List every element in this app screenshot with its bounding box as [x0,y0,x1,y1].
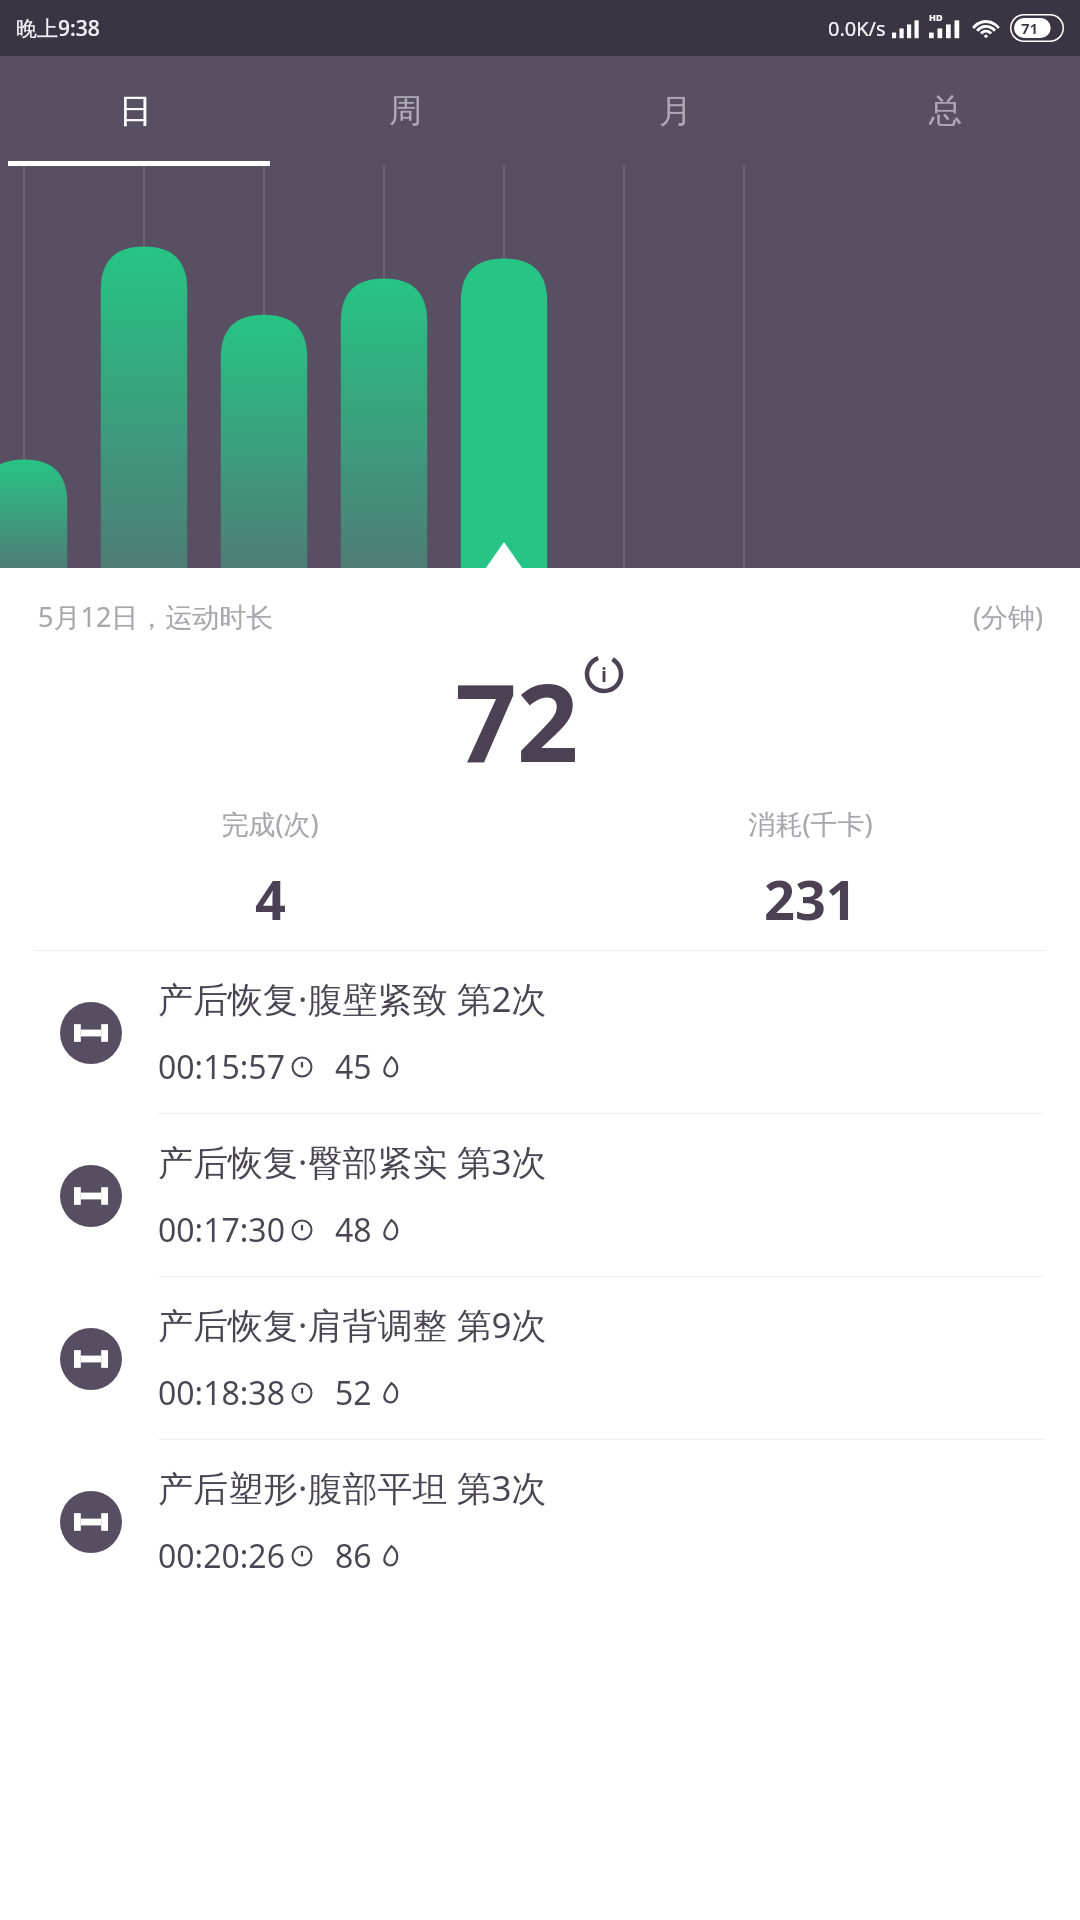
staticText: 消耗(千卡) [748,805,873,842]
staticText: 4 [255,862,286,936]
staticText: 71 [1021,18,1039,38]
staticText: 72 [455,647,579,794]
staticText: 月 [659,90,692,132]
button[interactable]: 完成(次) [0,805,540,936]
button[interactable]: 月 [540,56,810,166]
button[interactable]: 产后恢复·臀部紧实 第3次 [0,1114,1080,1277]
staticText: 总 [929,90,962,132]
staticText: 00:18:38 [158,1371,285,1415]
staticText: 48 [335,1208,372,1252]
button[interactable]: 日 [0,56,270,166]
staticText: 产后恢复·肩背调整 第9次 [158,1301,547,1349]
staticText: 晚上9:38 [16,14,100,43]
button[interactable]: 产后恢复·肩背调整 第9次 [0,1277,1080,1440]
staticText: 45 [335,1045,372,1089]
staticText: 产后塑形·腹部平坦 第3次 [158,1464,547,1512]
staticText: 00:15:57 [158,1045,285,1089]
staticText: 5月12日，运动时长 [38,598,274,635]
staticText: 产后恢复·腹壁紧致 第2次 [158,975,547,1023]
staticText: (分钟) [973,598,1044,635]
staticText: 产后恢复·臀部紧实 第3次 [158,1138,547,1186]
staticText: 周 [389,90,422,132]
button[interactable]: 产后恢复·腹壁紧致 第2次 [0,951,1080,1114]
button[interactable]: 消耗(千卡) [540,805,1080,936]
staticText: 00:17:30 [158,1208,285,1252]
staticText: 日 [119,90,152,132]
staticText: 231 [764,862,857,936]
staticText: 52 [335,1371,372,1415]
button[interactable]: Info [583,653,625,695]
button[interactable]: 周 [270,56,540,166]
staticText: 86 [335,1534,372,1578]
staticText: i [601,661,607,688]
button[interactable]: 产后塑形·腹部平坦 第3次 [0,1440,1080,1603]
staticText: 0.0K/s [828,15,886,42]
staticText: HD [929,11,943,23]
button[interactable]: 总 [810,56,1080,166]
staticText: 完成(次) [221,805,319,842]
staticText: 00:20:26 [158,1534,285,1578]
